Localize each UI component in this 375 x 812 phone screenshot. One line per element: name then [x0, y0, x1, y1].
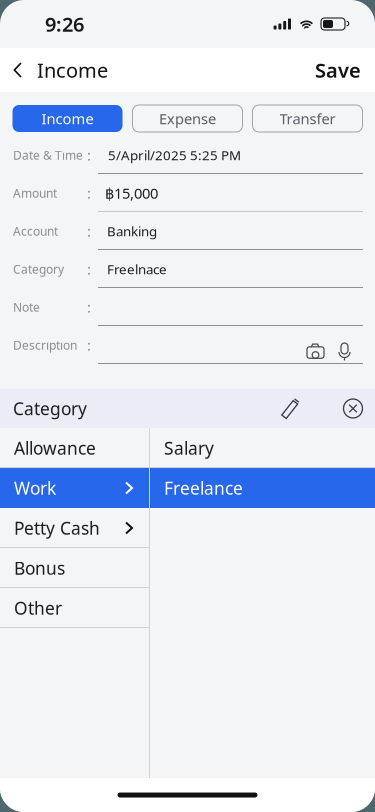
button[interactable]: Salary	[150, 428, 375, 468]
button[interactable]: Expense	[132, 105, 242, 132]
staticText: Date & Time	[13, 147, 83, 163]
staticText: Expense	[159, 109, 216, 128]
button[interactable]: Income	[0, 46, 108, 94]
button[interactable]: Income	[12, 105, 122, 132]
staticText: :	[87, 259, 91, 279]
staticText: Income	[41, 109, 93, 128]
button[interactable]: Allowance	[0, 428, 149, 468]
staticText: Salary	[164, 436, 214, 459]
staticText: Account	[13, 223, 58, 239]
button[interactable]: Bonus	[0, 548, 149, 588]
staticText: :	[87, 335, 91, 355]
staticText: Transfer	[279, 109, 335, 128]
button[interactable]: Save	[315, 46, 375, 94]
staticText: 9:26	[45, 11, 84, 37]
staticText: Save	[315, 57, 361, 83]
button[interactable]: Edit categories	[281, 397, 300, 419]
staticText: Income	[37, 57, 108, 83]
staticText: Petty Cash	[14, 516, 100, 539]
staticText: Work	[14, 476, 56, 499]
staticText: ฿15,000	[105, 183, 158, 203]
staticText: Bonus	[14, 556, 65, 579]
button[interactable]: Other	[0, 588, 149, 628]
staticText: Freelance	[164, 476, 243, 499]
button[interactable]: Add photo	[307, 326, 324, 371]
button[interactable]: Petty Cash	[0, 508, 149, 548]
staticText: Banking	[107, 222, 157, 240]
button[interactable]: Record voice note	[338, 326, 351, 371]
staticText: Other	[14, 596, 62, 619]
staticText: :	[87, 145, 91, 165]
staticText: :	[87, 297, 91, 317]
staticText: :	[87, 221, 91, 241]
staticText: Category	[13, 397, 87, 420]
staticText: :	[87, 183, 91, 203]
button[interactable]: Close	[300, 398, 375, 418]
staticText: Freelnace	[107, 260, 167, 278]
staticText: 5/April/2025 5:25 PM	[108, 146, 241, 164]
staticText: Allowance	[14, 436, 96, 459]
button[interactable]: Transfer	[252, 105, 362, 132]
button[interactable]: Work	[0, 468, 149, 508]
button[interactable]: Freelance	[150, 468, 375, 508]
staticText: Category	[13, 261, 64, 277]
staticText: Amount	[13, 185, 57, 201]
staticText: Description	[13, 337, 77, 353]
staticText: Note	[13, 299, 40, 315]
